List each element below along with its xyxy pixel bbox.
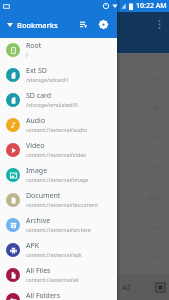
staticText: content://external/apk bbox=[26, 251, 82, 258]
button[interactable]: (9) bbox=[0, 93, 169, 123]
button[interactable]: Bookmarks bbox=[0, 12, 75, 37]
button[interactable]: All Folders bbox=[0, 287, 117, 300]
staticText: (9) bbox=[154, 104, 162, 112]
button[interactable]: (2) bbox=[0, 123, 169, 153]
staticText: All Folders bbox=[26, 291, 61, 300]
button[interactable]: More options bbox=[152, 17, 166, 31]
button[interactable]: Ext SD bbox=[0, 62, 117, 87]
staticText: SD card bbox=[26, 91, 52, 101]
button[interactable]: (2) bbox=[0, 63, 169, 93]
button[interactable]: (152) bbox=[0, 183, 169, 213]
button[interactable]: Audio bbox=[0, 112, 117, 137]
staticText: AZ bbox=[122, 282, 132, 292]
staticText: content://external/video bbox=[26, 151, 87, 158]
button[interactable]: Document bbox=[0, 187, 117, 212]
button[interactable]: Grid view bbox=[152, 279, 168, 295]
staticText: /storage/emulated/0 bbox=[26, 101, 78, 108]
staticText: APK bbox=[26, 241, 40, 251]
button[interactable]: Root bbox=[0, 37, 117, 62]
button[interactable]: Video bbox=[0, 137, 117, 162]
staticText: Image bbox=[26, 166, 48, 176]
staticText: content://external/archive bbox=[26, 226, 91, 233]
button[interactable]: (1) bbox=[0, 153, 169, 183]
staticText: content://external/audio bbox=[26, 126, 87, 133]
button[interactable]: All Files bbox=[0, 262, 117, 287]
staticText: All Files bbox=[26, 266, 51, 276]
button[interactable]: Image bbox=[0, 162, 117, 187]
staticText: Video bbox=[26, 141, 45, 151]
staticText: Root bbox=[26, 41, 42, 51]
staticText: Audio bbox=[26, 116, 46, 126]
staticText: Document bbox=[26, 191, 61, 201]
staticText: / bbox=[26, 51, 28, 58]
button[interactable]: (3) bbox=[0, 243, 169, 273]
staticText: Bookmarks bbox=[17, 20, 58, 30]
button[interactable]: (2) bbox=[0, 213, 169, 243]
button[interactable]: Add bookmark bbox=[75, 16, 92, 33]
staticText: Ext SD bbox=[26, 66, 47, 76]
button[interactable]: Settings bbox=[95, 16, 112, 33]
button[interactable]: APK bbox=[0, 237, 117, 262]
staticText: 10:22 AM bbox=[136, 1, 167, 11]
button[interactable]: Archive bbox=[0, 212, 117, 237]
button[interactable]: SD card bbox=[0, 87, 117, 112]
staticText: Archive bbox=[26, 216, 51, 226]
staticText: content://external/image bbox=[26, 176, 89, 183]
staticText: /storage/sdcard1 bbox=[26, 76, 69, 83]
button[interactable]: (4) bbox=[0, 273, 169, 274]
staticText: content://external/all bbox=[26, 276, 79, 283]
button[interactable]: Sort A to Z bbox=[119, 279, 135, 295]
staticText: content://external/document bbox=[26, 201, 99, 208]
